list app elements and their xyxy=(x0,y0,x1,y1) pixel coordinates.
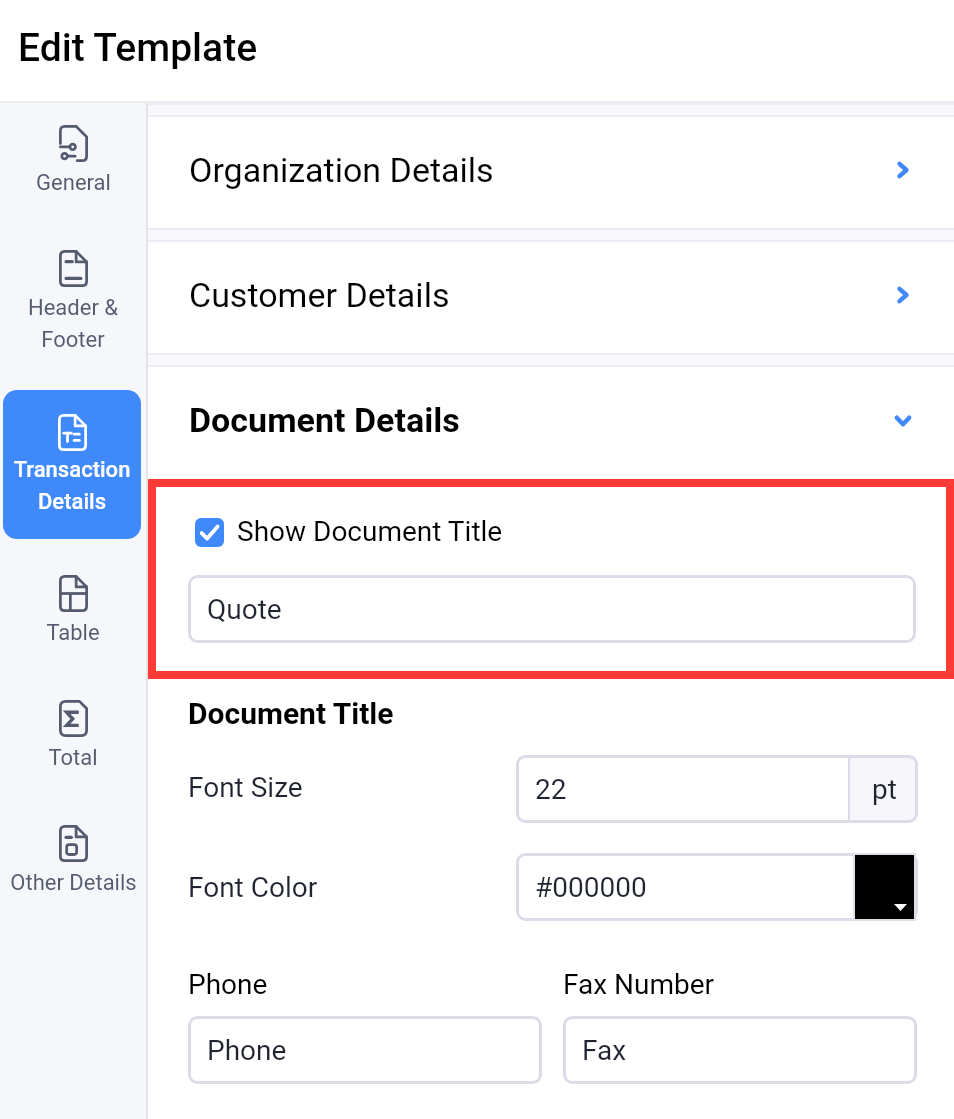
button[interactable]: Document Details xyxy=(148,367,954,479)
staticText: Table xyxy=(46,620,100,646)
staticText: Font Size xyxy=(188,771,303,804)
button[interactable]: Show Document Title xyxy=(195,516,503,549)
staticText: Header & Footer xyxy=(3,295,143,353)
staticText: Fax Number xyxy=(563,968,715,1001)
staticText: 22 xyxy=(535,773,567,806)
button[interactable]: #000000 xyxy=(516,853,918,921)
staticText: Total xyxy=(48,745,98,771)
button[interactable]: Total xyxy=(0,700,146,771)
button[interactable]: Organization Details xyxy=(148,117,954,228)
button[interactable]: Fax xyxy=(563,1016,917,1084)
button[interactable]: Header & Footer xyxy=(0,250,146,353)
staticText: #000000 xyxy=(535,871,647,904)
button[interactable]: Phone xyxy=(188,1016,542,1084)
button[interactable]: Table xyxy=(0,575,146,646)
staticText: Phone xyxy=(188,968,268,1001)
button[interactable]: Transaction Details xyxy=(3,390,141,539)
staticText: Fax xyxy=(582,1034,627,1067)
staticText: Other Details xyxy=(10,870,137,896)
staticText: Document Title xyxy=(188,696,394,731)
staticText: pt xyxy=(872,773,897,806)
staticText: Organization Details xyxy=(189,150,494,190)
staticText: Document Details xyxy=(189,400,460,440)
staticText: Edit Template xyxy=(18,25,258,71)
button[interactable]: General xyxy=(0,125,146,196)
button[interactable]: Pick color xyxy=(855,855,914,919)
button[interactable]: 22 xyxy=(516,755,918,823)
staticText: Font Color xyxy=(188,871,318,904)
staticText: Transaction Details xyxy=(6,457,138,515)
button[interactable]: Other Details xyxy=(0,825,146,896)
staticText: Customer Details xyxy=(189,275,450,315)
button[interactable]: Customer Details xyxy=(148,242,954,353)
button[interactable]: Quote xyxy=(188,575,916,643)
staticText: General xyxy=(36,170,111,196)
staticText: Quote xyxy=(207,593,282,626)
staticText: Show Document Title xyxy=(237,515,503,548)
staticText: Phone xyxy=(207,1034,287,1067)
